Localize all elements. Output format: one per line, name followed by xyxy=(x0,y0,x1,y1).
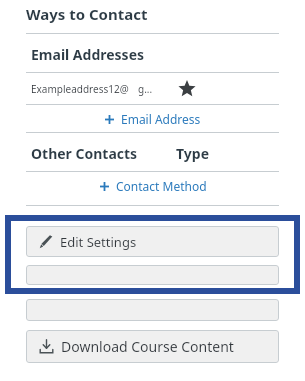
button[interactable]: Edit Settings xyxy=(26,226,279,257)
staticText: Edit Settings xyxy=(60,233,137,251)
button[interactable]: Email Address xyxy=(0,105,305,132)
button[interactable]: Default email xyxy=(176,78,198,100)
staticText: Type xyxy=(176,144,209,163)
staticText: g... xyxy=(138,82,153,96)
staticText: Email Address xyxy=(121,111,201,127)
staticText: Email Addresses xyxy=(31,45,145,64)
staticText: Exampleaddress12@ xyxy=(31,82,129,96)
button[interactable] xyxy=(26,265,279,285)
button[interactable]: Download Course Content xyxy=(26,330,279,363)
staticText: Ways to Contact xyxy=(26,4,148,24)
button[interactable] xyxy=(26,299,279,321)
staticText: Contact Method xyxy=(116,178,207,194)
staticText: Other Contacts xyxy=(31,144,138,163)
staticText: Download Course Content xyxy=(61,337,234,356)
button[interactable]: Exampleaddress12@ xyxy=(0,73,305,104)
button[interactable]: Contact Method xyxy=(0,172,305,199)
